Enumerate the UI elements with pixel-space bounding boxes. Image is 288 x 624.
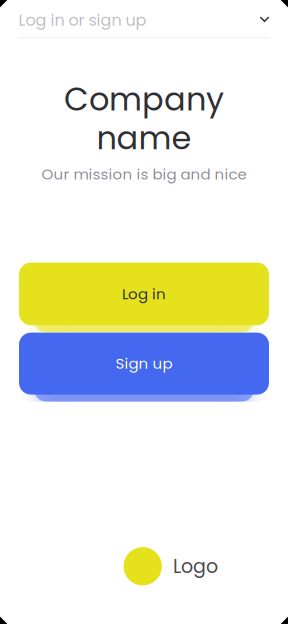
staticText: Log in <box>122 283 166 304</box>
staticText: Sign up <box>115 353 172 374</box>
staticText: Log in or sign up <box>18 9 146 31</box>
button[interactable]: Sign up <box>19 333 269 395</box>
button[interactable]: Log in <box>19 263 269 325</box>
staticText: Logo <box>173 553 218 579</box>
staticText: name <box>96 116 191 160</box>
staticText: Our mission is big and nice <box>41 164 246 185</box>
button[interactable]: Log in or sign up <box>18 0 269 38</box>
staticText: Company <box>64 77 224 122</box>
